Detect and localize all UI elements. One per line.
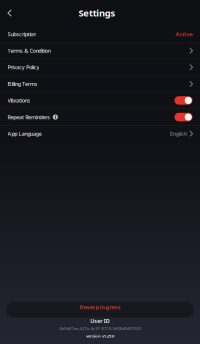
staticText: & [24, 47, 28, 54]
button[interactable]: Privacy [0, 59, 200, 75]
button[interactable]: Reset [6, 302, 194, 317]
button[interactable]: Billing [0, 76, 200, 92]
button[interactable]: App [0, 126, 200, 142]
button[interactable]: Repeat Reminders [174, 113, 192, 121]
staticText: Subscription [7, 30, 36, 38]
staticText: Billing [7, 80, 21, 87]
staticText: i [55, 114, 56, 120]
staticText: ID [104, 317, 110, 325]
staticText: Reset [79, 303, 94, 311]
button[interactable]: Terms [0, 43, 200, 59]
staticText: progress [96, 303, 121, 311]
staticText: Policy [26, 63, 39, 71]
staticText: Terms [22, 80, 38, 87]
staticText: 4b9b87aa-427e-4c91-9710-3d38d0d07020 [59, 326, 141, 331]
staticText: version [86, 333, 101, 339]
button[interactable]: Vibrations [174, 96, 192, 105]
staticText: Reminders [25, 113, 50, 121]
staticText: Active [175, 30, 192, 38]
staticText: Language [19, 130, 42, 137]
staticText: English [170, 130, 187, 137]
staticText: Condition [30, 47, 51, 54]
staticText: Repeat [7, 113, 24, 121]
staticText: Terms [7, 47, 23, 54]
staticText: App [7, 130, 17, 137]
staticText: Settings [78, 7, 115, 19]
button[interactable]: Back [0, 5, 11, 21]
staticText: v1.29.0 [102, 333, 114, 339]
button[interactable]: Subscription [0, 26, 200, 42]
staticText: User [90, 317, 102, 325]
staticText: Vibrations [7, 97, 30, 104]
staticText: Privacy [7, 63, 25, 71]
